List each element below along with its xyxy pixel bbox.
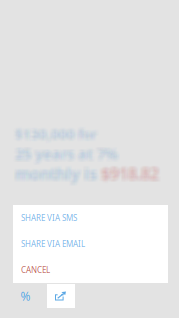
staticText: $130,000 for [16, 123, 98, 140]
staticText: 25 years at 7% [17, 146, 120, 166]
staticText: $130,000 for [13, 126, 95, 144]
button[interactable]: SHARE VIA SMS [13, 205, 168, 231]
staticText: $130,000 for [15, 126, 97, 144]
staticText: $918.82 [99, 163, 157, 184]
staticText: $130,000 for [17, 127, 99, 145]
staticText: 25 years at 7% [13, 146, 116, 166]
staticText: % [20, 288, 30, 304]
staticText: monthly is [14, 164, 96, 185]
staticText: monthly is [17, 165, 99, 186]
staticText: $918.82 [100, 165, 158, 186]
staticText: monthly is [13, 165, 95, 186]
staticText: $918.82 [101, 164, 159, 185]
staticText: $918.82 [101, 162, 159, 183]
staticText: $130,000 for [15, 125, 97, 143]
staticText: monthly is [17, 161, 99, 182]
staticText: $130,000 for [17, 126, 99, 144]
button[interactable]: SHARE VIA EMAIL [13, 231, 168, 257]
staticText: $130,000 for [16, 127, 98, 145]
staticText: monthly is [16, 164, 98, 185]
staticText: monthly is [17, 163, 99, 184]
staticText: 25 years at 7% [13, 143, 116, 162]
staticText: $130,000 for [15, 123, 97, 140]
staticText: 25 years at 7% [15, 146, 118, 166]
staticText: 25 years at 7% [14, 145, 117, 165]
staticText: $130,000 for [16, 124, 98, 142]
staticText: $918.82 [102, 162, 160, 183]
staticText: 25 years at 7% [15, 142, 118, 161]
staticText: $130,000 for [15, 124, 97, 142]
staticText: $918.82 [102, 163, 160, 184]
button[interactable]: Share [47, 284, 75, 308]
staticText: $130,000 for [13, 124, 95, 142]
staticText: $918.82 [100, 163, 158, 184]
button[interactable]: CANCEL [13, 257, 168, 283]
staticText: 25 years at 7% [16, 145, 119, 165]
staticText: monthly is [16, 163, 98, 184]
staticText: $918.82 [103, 162, 161, 183]
staticText: monthly is [13, 161, 95, 182]
staticText: $918.82 [101, 161, 159, 182]
staticText: monthly is [13, 163, 95, 184]
staticText: 25 years at 7% [16, 146, 119, 166]
staticText: $918.82 [102, 165, 160, 186]
staticText: 25 years at 7% [14, 144, 117, 163]
staticText: $918.82 [103, 164, 161, 185]
staticText: SHARE VIA EMAIL [21, 239, 85, 249]
staticText: $130,000 for [14, 126, 96, 144]
staticText: 25 years at 7% [14, 146, 117, 166]
staticText: monthly is [15, 162, 97, 183]
staticText: $130,000 for [15, 127, 97, 145]
staticText: $918.82 [99, 165, 157, 186]
staticText: 25 years at 7% [15, 144, 118, 163]
staticText: $130,000 for [13, 123, 95, 140]
staticText: $918.82 [103, 165, 161, 186]
staticText: $918.82 [99, 164, 157, 185]
staticText: 25 years at 7% [15, 145, 118, 165]
staticText: $130,000 for [14, 127, 96, 145]
staticText: $918.82 [101, 165, 159, 186]
staticText: 25 years at 7% [17, 145, 120, 165]
staticText: $918.82 [100, 164, 158, 185]
staticText: monthly is [13, 162, 95, 183]
staticText: 25 years at 7% [13, 145, 116, 165]
staticText: 25 years at 7% [15, 143, 118, 162]
staticText: $918.82 [102, 164, 160, 185]
staticText: monthly is [14, 162, 96, 183]
staticText: monthly is [15, 164, 97, 185]
staticText: $918.82 [99, 162, 157, 183]
staticText: monthly is [15, 165, 97, 186]
staticText: 25 years at 7% [16, 142, 119, 161]
staticText: monthly is [17, 164, 99, 185]
staticText: monthly is [14, 165, 96, 186]
staticText: monthly is [16, 161, 98, 182]
staticText: $918.82 [100, 162, 158, 183]
staticText: CANCEL [21, 265, 50, 275]
staticText: $918.82 [103, 163, 161, 184]
staticText: 25 years at 7% [17, 142, 120, 161]
staticText: 25 years at 7% [17, 143, 120, 162]
staticText: monthly is [14, 163, 96, 184]
staticText: $130,000 for [17, 123, 99, 140]
staticText: 25 years at 7% [13, 144, 116, 163]
staticText: monthly is [15, 161, 97, 182]
staticText: monthly is [14, 161, 96, 182]
staticText: monthly is [16, 165, 98, 186]
staticText: $130,000 for [14, 125, 96, 143]
staticText: $130,000 for [14, 124, 96, 142]
staticText: $130,000 for [16, 126, 98, 144]
staticText: $130,000 for [17, 124, 99, 142]
button[interactable]: Interest rate [0, 284, 47, 308]
staticText: 25 years at 7% [14, 143, 117, 162]
staticText: $918.82 [103, 161, 161, 182]
staticText: $918.82 [102, 161, 160, 182]
staticText: 25 years at 7% [17, 144, 120, 163]
staticText: 25 years at 7% [16, 143, 119, 162]
staticText: 25 years at 7% [16, 144, 119, 163]
staticText: 25 years at 7% [14, 142, 117, 161]
staticText: $918.82 [100, 161, 158, 182]
staticText: $130,000 for [13, 125, 95, 143]
staticText: monthly is [13, 164, 95, 185]
staticText: $130,000 for [17, 125, 99, 143]
staticText: monthly is [17, 162, 99, 183]
